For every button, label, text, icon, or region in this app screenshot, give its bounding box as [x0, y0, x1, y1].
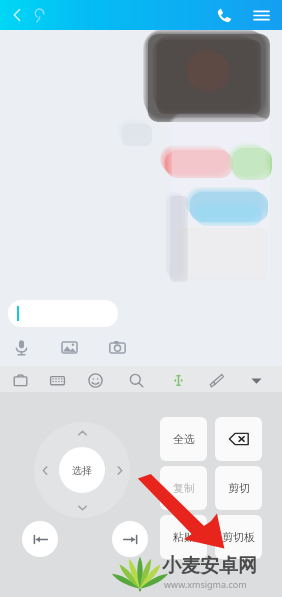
button[interactable]: Down	[71, 496, 93, 518]
staticText: www.xmsigma.com	[164, 578, 247, 590]
button[interactable]: Back	[6, 4, 28, 26]
button[interactable]: Gallery	[58, 336, 80, 358]
button[interactable]: 粘贴	[160, 515, 207, 559]
button[interactable]: Search	[123, 367, 149, 393]
button[interactable]: 复制	[160, 466, 207, 510]
button[interactable]: 选择	[59, 447, 105, 493]
button[interactable]: Voice input	[10, 336, 32, 358]
button[interactable]: Call	[211, 2, 237, 28]
staticText: 剪切板	[222, 530, 255, 544]
button[interactable]: Right	[108, 459, 130, 481]
button[interactable]: 剪切板	[215, 515, 262, 559]
button[interactable]: Cursor	[165, 367, 191, 393]
button[interactable]: Delete	[215, 417, 262, 461]
button[interactable]: Menu	[248, 2, 274, 28]
button[interactable]: Camera	[106, 336, 128, 358]
staticText: 选择	[72, 464, 92, 477]
button[interactable]: 全选	[160, 417, 207, 461]
staticText: 全选	[173, 432, 195, 446]
staticText: 粘贴	[173, 530, 195, 544]
button[interactable]: Left	[34, 459, 56, 481]
button[interactable]: Up	[71, 422, 93, 444]
button[interactable]: Keyboard	[44, 367, 70, 393]
staticText: 剪切	[228, 481, 250, 495]
button[interactable]: Theme	[203, 367, 229, 393]
button[interactable]	[8, 300, 118, 327]
staticText: 小麦安卓网	[162, 554, 257, 578]
button[interactable]: Voice	[28, 4, 50, 26]
staticText: 复制	[173, 481, 195, 495]
button[interactable]: Emoji	[82, 367, 108, 393]
button[interactable]: Move to end	[112, 521, 148, 557]
button[interactable]: Toolbox	[7, 367, 33, 393]
button[interactable]: 剪切	[215, 466, 262, 510]
button[interactable]: Move to start	[22, 521, 58, 557]
button[interactable]: More	[243, 367, 269, 393]
